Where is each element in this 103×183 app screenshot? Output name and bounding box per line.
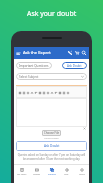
button[interactable]: Format tool bbox=[38, 91, 42, 95]
button[interactable]: Format tool bbox=[34, 91, 38, 95]
staticText: More bbox=[79, 173, 85, 176]
button[interactable]: Choose File bbox=[42, 130, 61, 136]
button[interactable]: Format tool bbox=[30, 91, 34, 95]
staticText: Videos bbox=[33, 173, 41, 176]
staticText: Ask the Expert bbox=[23, 50, 51, 56]
button[interactable]: Search bbox=[81, 50, 87, 56]
button[interactable]: Format tool bbox=[62, 91, 66, 95]
button[interactable]: Format tool bbox=[18, 91, 22, 95]
button[interactable]: Format tool bbox=[22, 91, 26, 95]
button[interactable]: Live bbox=[59, 165, 74, 183]
staticText: Select Subject bbox=[19, 75, 39, 79]
staticText: No file chosen bbox=[44, 137, 59, 140]
button[interactable]: Videos bbox=[29, 165, 44, 183]
button[interactable]: Ask Doubt bbox=[62, 62, 87, 69]
button[interactable]: Important Questions bbox=[16, 62, 52, 69]
button[interactable]: Format tool bbox=[54, 91, 58, 95]
button[interactable]: Call bbox=[67, 50, 73, 56]
button[interactable]: Select Subject bbox=[16, 73, 87, 80]
button[interactable]: My Tests bbox=[14, 165, 29, 183]
button[interactable]: Format tool bbox=[26, 91, 30, 95]
staticText: Ask Doubt bbox=[44, 144, 60, 148]
staticText: Queries asked on Sunday or after 7 pm on… bbox=[17, 153, 86, 160]
staticText: Doubts bbox=[48, 173, 56, 176]
button[interactable]: Format tool bbox=[46, 91, 50, 95]
button[interactable]: More bbox=[74, 165, 89, 183]
button[interactable]: Menu bbox=[16, 51, 21, 56]
button[interactable]: Format tool bbox=[58, 91, 62, 95]
staticText: Ask Doubt bbox=[67, 64, 82, 68]
button[interactable]: Cart bbox=[74, 50, 80, 56]
button[interactable]: Format tool bbox=[66, 91, 70, 95]
staticText: Ask your doubt bbox=[27, 9, 77, 18]
staticText: Choose File bbox=[44, 131, 59, 135]
button[interactable]: Close bbox=[83, 127, 86, 130]
button[interactable]: Doubts bbox=[44, 165, 59, 183]
staticText: My Tests bbox=[17, 173, 27, 176]
staticText: Live bbox=[64, 173, 69, 176]
button[interactable]: Format tool bbox=[50, 91, 54, 95]
button[interactable]: Format tool bbox=[42, 91, 46, 95]
staticText: Important Questions bbox=[19, 64, 49, 68]
button[interactable]: Ask Doubt bbox=[16, 141, 87, 151]
